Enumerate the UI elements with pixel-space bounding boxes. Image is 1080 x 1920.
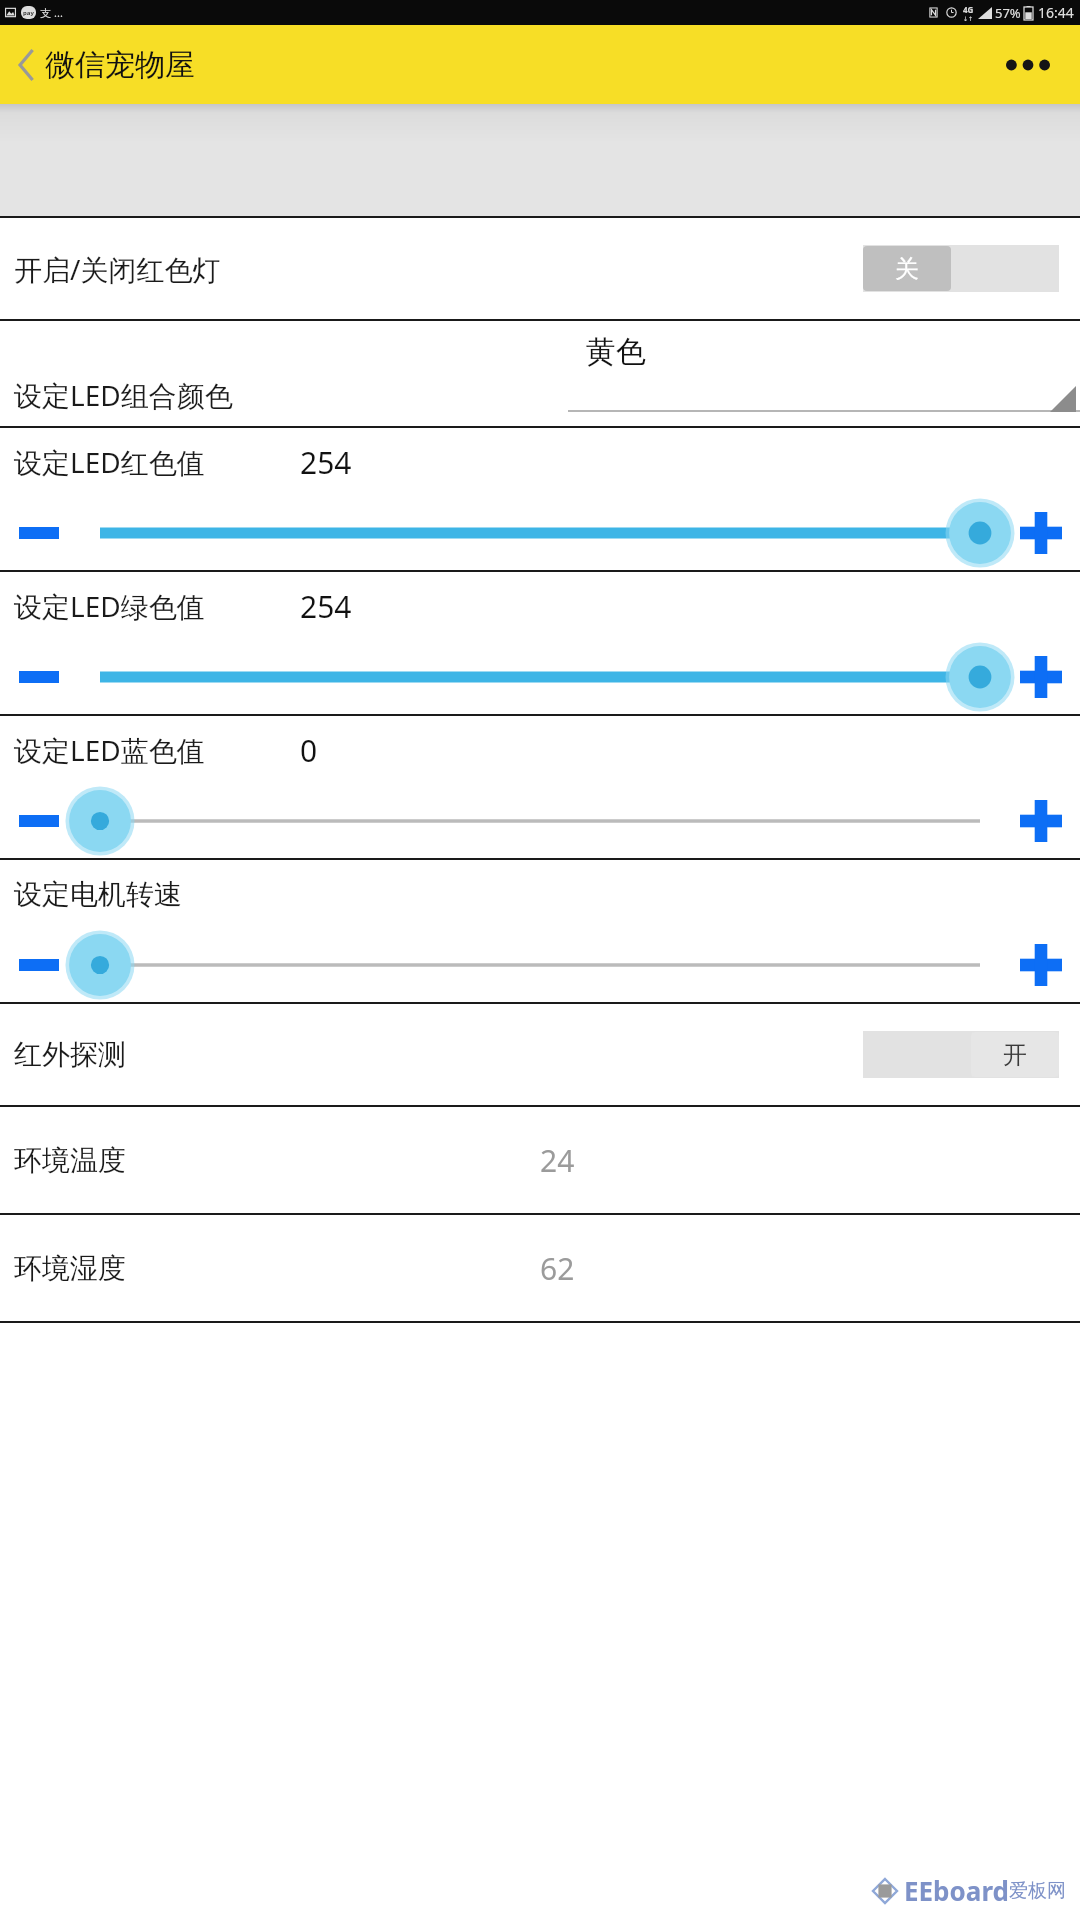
button[interactable]: Increase <box>1018 942 1064 988</box>
button[interactable]: 红外探测 <box>0 1004 1080 1105</box>
staticText: 254 <box>300 442 352 483</box>
button[interactable]: More options <box>998 51 1058 79</box>
button[interactable] <box>86 928 994 1002</box>
staticText: 设定LED组合颜色 <box>14 376 233 414</box>
button[interactable] <box>86 496 994 570</box>
staticText: 开 <box>1003 1040 1027 1070</box>
button[interactable]: 环境温度 <box>0 1107 1080 1213</box>
button[interactable]: Decrease <box>16 662 62 692</box>
staticText: 环境温度 <box>14 1143 126 1178</box>
button[interactable]: Decrease <box>16 950 62 980</box>
staticText: 设定电机转速 <box>14 877 182 912</box>
button[interactable]: Increase <box>1018 510 1064 556</box>
staticText: 24 <box>540 1140 575 1181</box>
staticText: 设定LED红色值 <box>14 443 205 481</box>
button[interactable]: Decrease <box>16 518 62 548</box>
staticText: 57% <box>995 4 1021 22</box>
staticText: 红外探测 <box>14 1037 126 1072</box>
button[interactable]: 环境湿度 <box>0 1215 1080 1321</box>
staticText: ↓↑ <box>963 15 974 22</box>
staticText: 黄色 <box>586 333 646 371</box>
staticText: 设定LED蓝色值 <box>14 731 205 769</box>
button[interactable]: Increase <box>1018 798 1064 844</box>
button[interactable]: 开启/关闭红色灯 <box>0 218 1080 319</box>
button[interactable] <box>86 640 994 714</box>
button[interactable]: 设定LED组合颜色 <box>0 321 1080 426</box>
staticText: 16:44 <box>1038 3 1074 22</box>
staticText: 微信宠物屋 <box>45 46 195 84</box>
button[interactable] <box>86 784 994 858</box>
button[interactable]: Back <box>14 42 199 88</box>
staticText: 开启/关闭红色灯 <box>14 250 221 288</box>
staticText: pay <box>23 9 34 17</box>
button[interactable]: Increase <box>1018 654 1064 700</box>
other: Back <box>18 48 35 82</box>
staticText: 关 <box>895 254 919 284</box>
other: More options <box>1006 59 1050 71</box>
staticText: 254 <box>300 586 352 627</box>
staticText: 4G <box>963 4 974 15</box>
staticText: 支 <box>40 6 51 20</box>
staticText: 环境湿度 <box>14 1251 126 1286</box>
staticText: EEboard <box>904 1873 1009 1908</box>
button[interactable]: Decrease <box>16 806 62 836</box>
staticText: 设定LED绿色值 <box>14 587 205 625</box>
staticText: 爱板网 <box>1009 1879 1066 1903</box>
staticText: 0 <box>300 730 318 771</box>
staticText: ... <box>54 5 63 20</box>
staticText: 62 <box>540 1248 575 1289</box>
